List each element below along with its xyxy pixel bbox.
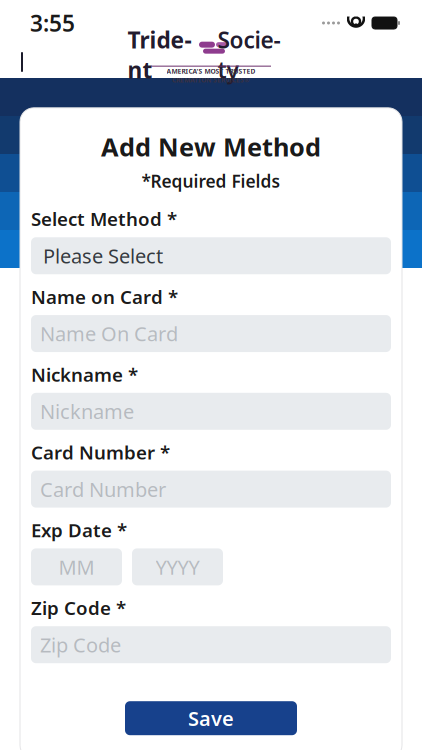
- button[interactable]: YYYY: [132, 548, 223, 585]
- staticText: Zip Code: [40, 631, 121, 658]
- staticText: Name on Card *: [31, 284, 178, 309]
- staticText: AMERICA'S MOST TRUSTED: [166, 67, 255, 75]
- button[interactable]: Back: [2, 40, 46, 84]
- staticText: 3:55: [30, 8, 75, 38]
- button[interactable]: Zip Code: [31, 626, 391, 663]
- staticText: Society: [217, 24, 280, 85]
- button[interactable]: Card Number: [31, 471, 391, 508]
- staticText: Name On Card: [40, 320, 178, 347]
- staticText: Add New Method: [101, 130, 321, 163]
- staticText: Card Number *: [31, 440, 170, 465]
- staticText: Please Select: [43, 242, 163, 269]
- staticText: MM: [58, 554, 94, 580]
- staticText: Trident: [127, 24, 191, 85]
- button[interactable]: MM: [31, 548, 122, 585]
- staticText: *Required Fields: [141, 169, 280, 192]
- button[interactable]: Nickname: [31, 393, 391, 430]
- staticText: Exp Date *: [31, 518, 127, 542]
- staticText: Nickname *: [31, 362, 138, 387]
- button[interactable]: Name On Card: [31, 315, 391, 352]
- button[interactable]: Please Select: [31, 237, 391, 274]
- staticText: Select Method *: [31, 206, 177, 231]
- button[interactable]: Save: [125, 701, 297, 735]
- staticText: Nickname: [40, 398, 134, 425]
- staticText: Card Number: [40, 476, 166, 502]
- staticText: CREMATION SERVICES®: [172, 75, 250, 84]
- staticText: Save: [188, 705, 234, 731]
- staticText: YYYY: [155, 554, 199, 580]
- staticText: Zip Code *: [31, 595, 126, 620]
